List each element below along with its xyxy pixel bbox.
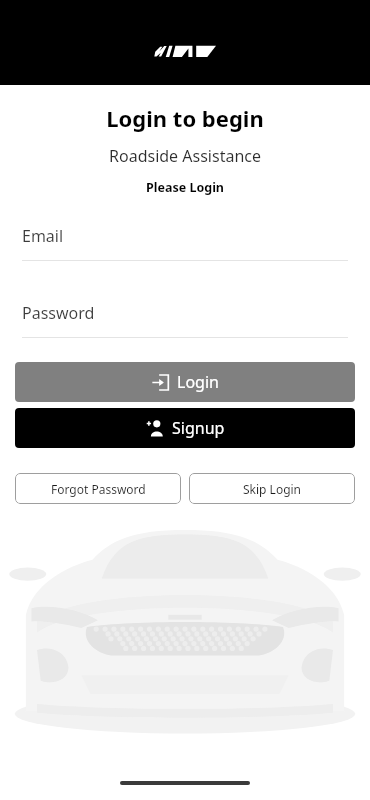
staticText: Login <box>177 371 219 393</box>
button[interactable]: Email <box>22 224 348 248</box>
other: KIA <box>154 43 216 60</box>
staticText: Skip Login <box>243 481 302 497</box>
button[interactable]: Signup <box>15 408 355 448</box>
other: Login <box>152 374 169 391</box>
staticText: Signup <box>172 417 225 439</box>
staticText: Forgot Password <box>51 481 146 497</box>
staticText: Email <box>22 225 64 247</box>
staticText: Password <box>22 302 95 324</box>
button[interactable]: Forgot Password <box>15 473 181 504</box>
staticText: Roadside Assistance <box>0 145 370 167</box>
button[interactable]: Password <box>22 301 348 325</box>
staticText: Login to begin <box>0 103 370 133</box>
button[interactable]: Skip Login <box>189 473 355 504</box>
other: Signup <box>146 419 164 437</box>
button[interactable]: Login <box>15 362 355 402</box>
staticText: Please Login <box>0 179 370 196</box>
